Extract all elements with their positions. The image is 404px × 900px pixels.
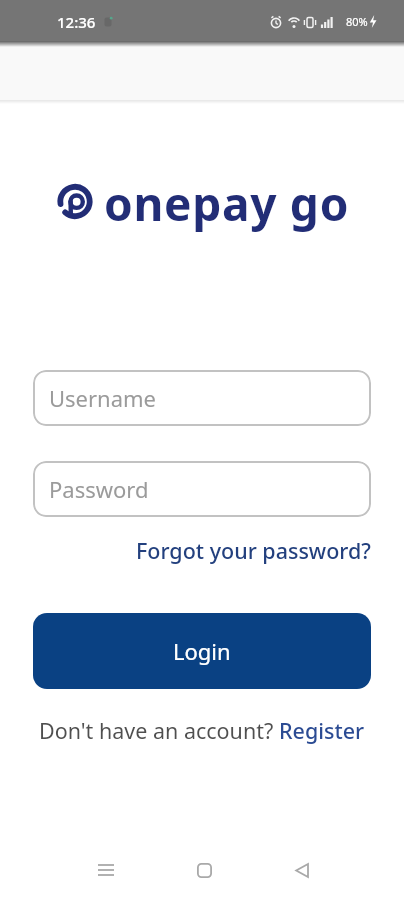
button[interactable] [86,850,126,890]
button[interactable]: Password [33,461,371,517]
button[interactable]: Forgot your password? [136,536,371,565]
button[interactable] [184,850,224,890]
staticText: Login [173,636,231,666]
staticText: Username [49,383,157,413]
button[interactable]: Username [33,370,371,426]
staticText: Password [49,474,149,504]
button[interactable]: Register [279,716,365,745]
staticText: 80% [346,14,368,29]
staticText: onepay go [104,172,350,235]
staticText: Don't have an account? [39,716,279,745]
button[interactable] [282,850,322,890]
staticText: 12:36 [57,12,96,32]
button[interactable]: Login [33,613,371,689]
